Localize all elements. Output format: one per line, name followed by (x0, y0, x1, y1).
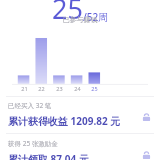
other: 已锁定 (142, 151, 151, 160)
staticText: 21 (21, 85, 28, 92)
staticText: 已参与赚钱 (0, 15, 160, 24)
button[interactable]: 获得 25 张激励金 (0, 139, 160, 160)
other: 已锁定 (142, 113, 151, 122)
button[interactable]: 25 (0, 0, 160, 27)
staticText: 23 (56, 85, 63, 92)
staticText: 累计领取 87.04 元 (8, 152, 89, 160)
staticText: 累计获得收益 1209.82 元 (8, 114, 121, 128)
staticText: 24 (74, 85, 81, 92)
button[interactable]: 每周收益柱状图 (12, 34, 148, 92)
staticText: 25 (52, 0, 83, 27)
staticText: 获得 25 张激励金 (8, 139, 58, 148)
staticText: 25 (91, 85, 98, 92)
staticText: 已经买入 32 笔 (8, 101, 52, 110)
staticText: /52周 (83, 10, 109, 24)
button[interactable]: 已经买入 32 笔 (0, 101, 160, 132)
staticText: 22 (38, 85, 45, 92)
